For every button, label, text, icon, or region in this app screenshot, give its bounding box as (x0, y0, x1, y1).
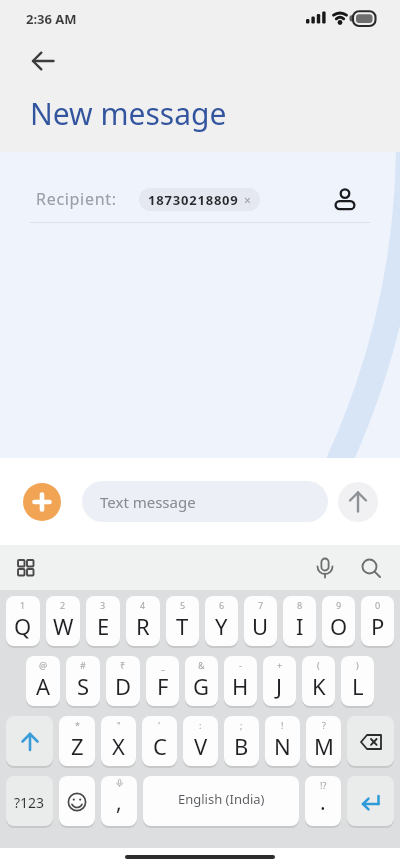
button[interactable]: A (26, 656, 60, 708)
staticText: L (352, 671, 364, 701)
staticText: ! (281, 719, 284, 731)
staticText: W (53, 611, 74, 641)
staticText: X (112, 731, 125, 761)
staticText: 18730218809 (148, 191, 239, 209)
staticText: F (157, 671, 169, 701)
staticText: U (252, 611, 269, 641)
staticText: M (314, 731, 334, 761)
staticText: 0 (375, 599, 381, 611)
staticText: English (India) (178, 790, 265, 808)
button[interactable]: G (185, 656, 218, 708)
button[interactable] (23, 483, 61, 521)
button[interactable]: S (66, 656, 100, 708)
staticText: 4 (140, 599, 146, 611)
button[interactable]: Z (59, 716, 95, 768)
button[interactable]: K (302, 656, 335, 708)
staticText: V (194, 731, 208, 761)
button[interactable] (347, 716, 394, 768)
button[interactable]: V (183, 716, 218, 768)
staticText: N (274, 731, 291, 761)
staticText: * (75, 719, 80, 731)
button[interactable]: L (341, 656, 374, 708)
staticText: & (198, 659, 205, 671)
button[interactable]: I (283, 596, 316, 648)
button[interactable] (6, 716, 53, 768)
button[interactable]: W (46, 596, 80, 648)
button[interactable]: U (244, 596, 277, 648)
staticText: . (320, 788, 326, 817)
button[interactable]: 18730218809 (148, 188, 251, 211)
button[interactable]: R (126, 596, 160, 648)
staticText: _ (161, 659, 165, 671)
button[interactable]: F (146, 656, 179, 708)
staticText: Recipient: (36, 188, 117, 210)
button[interactable]: P (361, 596, 394, 648)
staticText: # (80, 659, 86, 671)
button[interactable]: . (305, 776, 341, 828)
button[interactable]: Y (205, 596, 238, 648)
button[interactable] (16, 558, 36, 578)
staticText: C (153, 731, 167, 761)
staticText: 6 (219, 599, 225, 611)
button[interactable]: E (86, 596, 120, 648)
button[interactable]: T (166, 596, 199, 648)
button[interactable] (22, 40, 64, 82)
button[interactable]: C (142, 716, 177, 768)
staticText: New message (30, 93, 227, 134)
button[interactable]: D (106, 656, 140, 708)
staticText: 7 (258, 599, 264, 611)
staticText: Text message (100, 492, 196, 512)
staticText: × (244, 192, 251, 208)
staticText: !? (320, 779, 327, 791)
staticText: + (277, 659, 283, 671)
staticText: 5 (180, 599, 186, 611)
staticText: Q (14, 611, 32, 641)
button[interactable] (332, 186, 358, 212)
staticText: ) (356, 659, 359, 671)
staticText: O (330, 611, 348, 641)
button[interactable]: N (265, 716, 300, 768)
staticText: ?123 (14, 793, 45, 812)
staticText: S (77, 671, 90, 701)
staticText: 1 (20, 599, 26, 611)
staticText: K (312, 671, 326, 701)
staticText: G (193, 671, 210, 701)
button[interactable]: Text message (82, 481, 328, 522)
staticText: , (116, 788, 122, 817)
staticText: E (97, 611, 110, 641)
button[interactable]: B (224, 716, 259, 768)
button[interactable]: Q (6, 596, 40, 648)
staticText: 3 (100, 599, 106, 611)
button[interactable]: H (224, 656, 257, 708)
staticText: P (371, 611, 385, 641)
staticText: D (115, 671, 132, 701)
staticText: ₹ (120, 659, 126, 671)
staticText: : (199, 719, 202, 731)
staticText: 8 (297, 599, 303, 611)
button[interactable] (358, 555, 384, 581)
staticText: 2 (60, 599, 66, 611)
button[interactable]: ?123 (6, 776, 53, 828)
button[interactable]: English (India) (143, 776, 299, 828)
staticText: @ (39, 659, 48, 671)
staticText: I (296, 611, 304, 641)
button[interactable] (312, 555, 338, 581)
button[interactable]: X (101, 716, 136, 768)
button[interactable] (338, 482, 378, 522)
button[interactable] (59, 776, 95, 828)
staticText: ' (158, 719, 161, 731)
button[interactable]: M (306, 716, 341, 768)
button[interactable] (347, 776, 394, 828)
staticText: A (36, 671, 51, 701)
staticText: " (117, 719, 121, 731)
staticText: ( (317, 659, 320, 671)
button[interactable]: , (101, 776, 137, 828)
staticText: 9 (336, 599, 342, 611)
staticText: Z (71, 731, 84, 761)
button[interactable]: O (322, 596, 355, 648)
staticText: R (136, 611, 150, 641)
button[interactable]: J (263, 656, 296, 708)
staticText: H (232, 671, 249, 701)
staticText: ; (240, 719, 243, 731)
staticText: ? (322, 719, 326, 731)
